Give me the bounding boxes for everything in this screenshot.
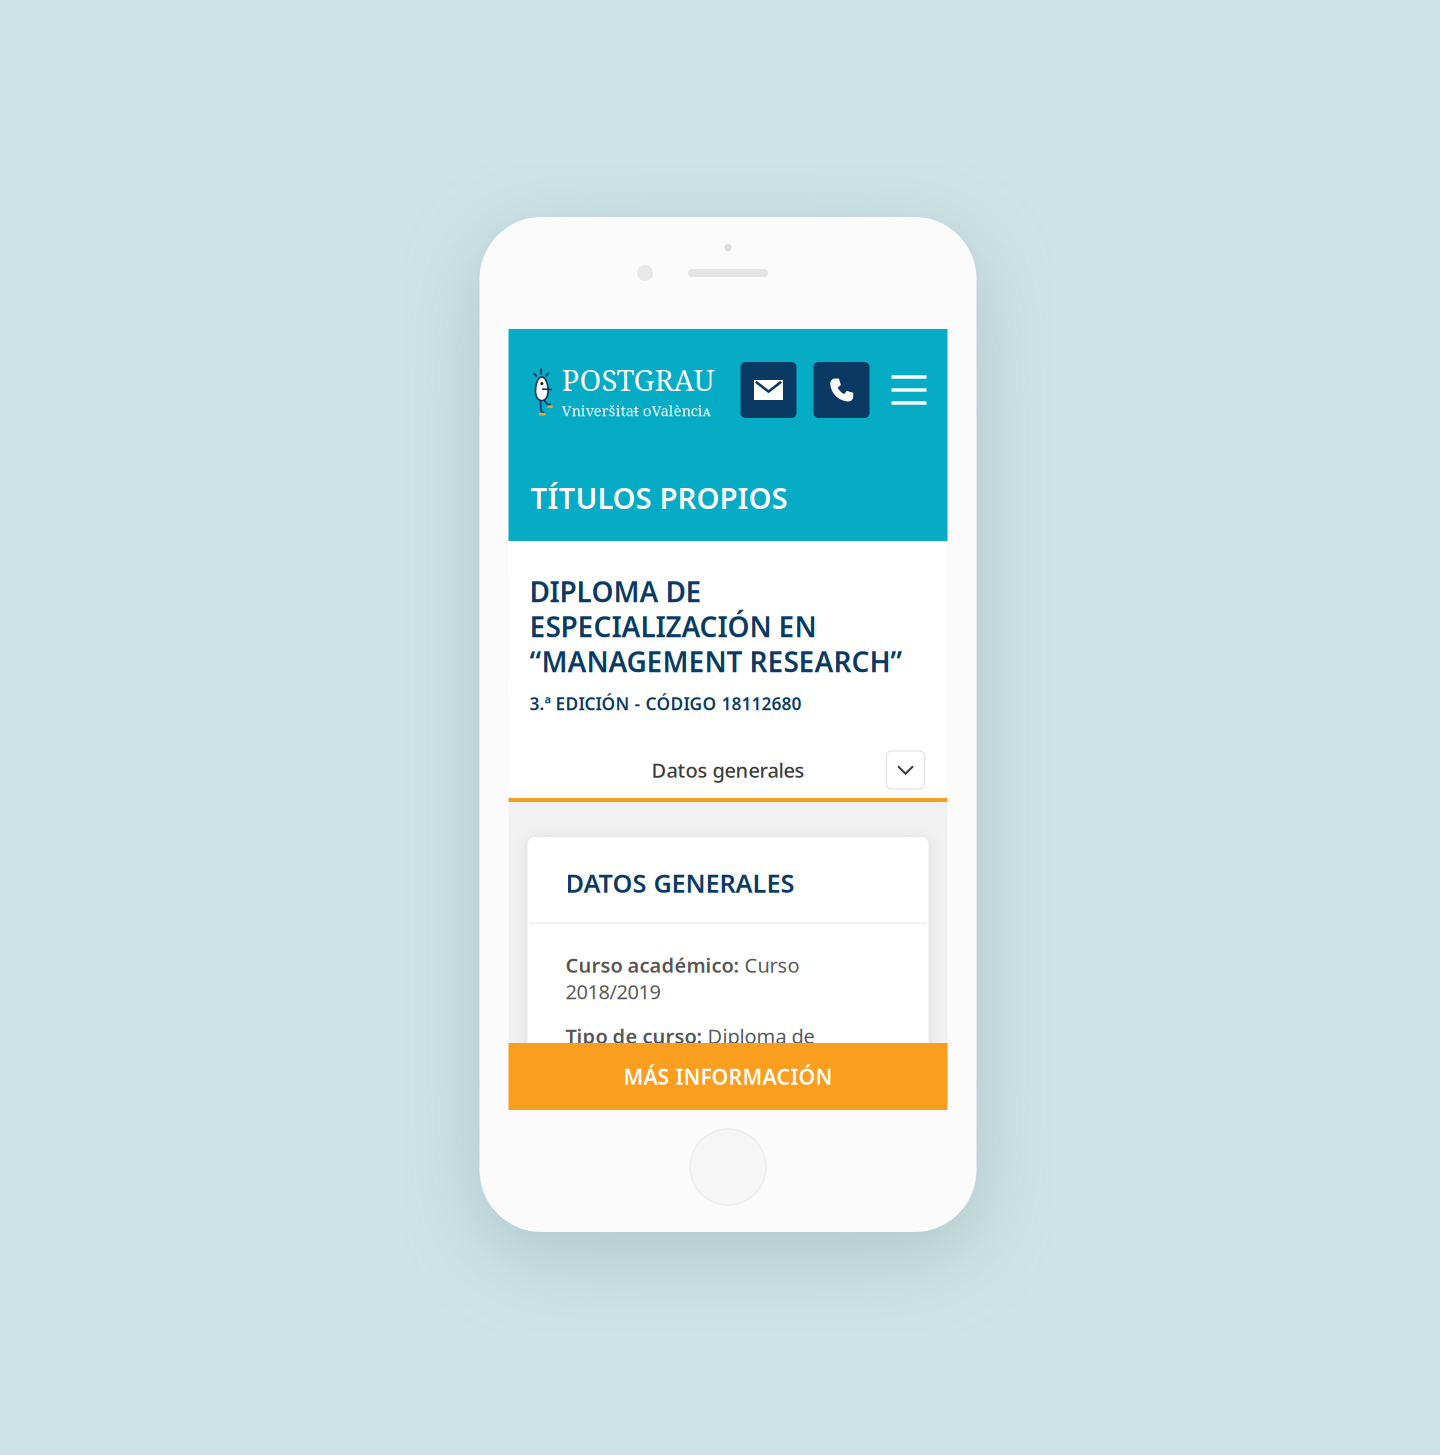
staticText: POSTGRAU [561,359,714,399]
staticText: DATOS GENERALES [565,866,794,900]
staticText: Vniveršitat̵ ᴏValènciᴀ [561,400,710,420]
staticText: Datos generales [651,757,804,783]
button[interactable]: MÁS INFORMACIÓN [508,1043,947,1110]
staticText: Tipo de curso: Diploma de [565,1023,814,1049]
button[interactable]: Call [813,362,869,418]
staticText: ESPECIALIZACIÓN EN [529,608,816,645]
button[interactable]: Email [740,362,796,418]
staticText: “MANAGEMENT RESEARCH” [529,643,902,680]
staticText: 3.ª EDICIÓN - CÓDIGO 18112680 [529,692,801,715]
staticText: TÍTULOS PROPIOS [530,478,787,517]
staticText: MÁS INFORMACIÓN [623,1062,832,1091]
staticText: Curso académico: Curso 2018/2019 [565,952,799,1005]
button[interactable]: Menu [891,362,926,418]
button[interactable]: Datos generales [508,742,947,798]
staticText: DIPLOMA DE [529,573,701,610]
